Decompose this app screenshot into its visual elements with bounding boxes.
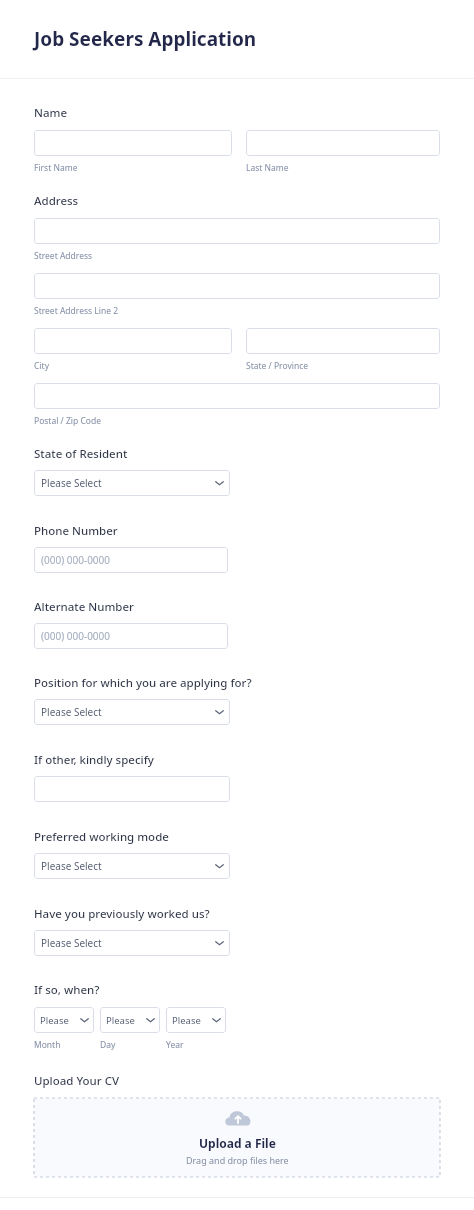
- staticText: Please: [106, 1014, 135, 1027]
- staticText: Please Select: [41, 705, 102, 719]
- staticText: Please: [40, 1014, 69, 1027]
- staticText: Postal / Zip Code: [34, 415, 101, 427]
- staticText: Upload Your CV: [34, 1073, 120, 1089]
- button[interactable]: [34, 218, 440, 244]
- staticText: State of Resident: [34, 446, 128, 462]
- staticText: Alternate Number: [34, 599, 134, 615]
- staticText: Phone Number: [34, 523, 118, 539]
- staticText: Upload a File: [199, 1135, 276, 1151]
- staticText: Please Select: [41, 476, 102, 490]
- button[interactable]: [246, 130, 440, 156]
- button[interactable]: [246, 328, 440, 354]
- staticText: State / Province: [246, 360, 309, 372]
- staticText: Year: [166, 1039, 184, 1051]
- button[interactable]: Please: [100, 1007, 160, 1033]
- staticText: Day: [100, 1039, 116, 1051]
- staticText: First Name: [34, 162, 78, 174]
- staticText: Preferred working mode: [34, 829, 169, 845]
- staticText: Position for which you are applying for?: [34, 675, 252, 691]
- staticText: If other, kindly specify: [34, 752, 154, 768]
- button[interactable]: Please Select: [34, 930, 230, 956]
- button[interactable]: [34, 328, 232, 354]
- staticText: Drag and drop files here: [186, 1154, 289, 1166]
- staticText: Name: [34, 105, 67, 121]
- staticText: If so, when?: [34, 982, 100, 998]
- button[interactable]: Please Select: [34, 470, 230, 496]
- staticText: Have you previously worked us?: [34, 906, 210, 922]
- button[interactable]: [34, 776, 230, 802]
- button[interactable]: Upload a File: [34, 1098, 440, 1177]
- button[interactable]: [34, 130, 232, 156]
- staticText: Please: [172, 1014, 201, 1027]
- button[interactable]: (000) 000-0000: [34, 547, 228, 573]
- staticText: Please Select: [41, 859, 102, 873]
- staticText: (000) 000-0000: [41, 629, 111, 643]
- button[interactable]: [34, 273, 440, 299]
- staticText: Please Select: [41, 936, 102, 950]
- staticText: (000) 000-0000: [41, 553, 111, 567]
- staticText: Month: [34, 1039, 61, 1051]
- staticText: Street Address Line 2: [34, 305, 119, 317]
- button[interactable]: Please Select: [34, 853, 230, 879]
- button[interactable]: (000) 000-0000: [34, 623, 228, 649]
- staticText: Address: [34, 193, 79, 209]
- staticText: City: [34, 360, 49, 372]
- button[interactable]: Please Select: [34, 699, 230, 725]
- button[interactable]: [34, 383, 440, 409]
- staticText: Job Seekers Application: [34, 26, 257, 52]
- staticText: Last Name: [246, 162, 289, 174]
- button[interactable]: Please: [34, 1007, 94, 1033]
- button[interactable]: Please: [166, 1007, 226, 1033]
- staticText: Street Address: [34, 250, 93, 262]
